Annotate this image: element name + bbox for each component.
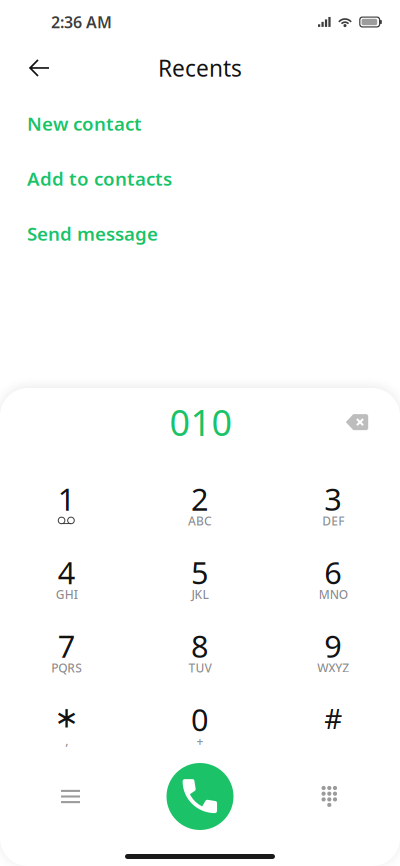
button[interactable]: 0 xyxy=(133,689,267,763)
button[interactable]: 4 xyxy=(0,542,133,616)
staticText: 2:36 AM xyxy=(51,11,112,33)
staticText: 7 xyxy=(58,625,76,666)
staticText: WXYZ xyxy=(317,660,349,676)
staticText: 1 xyxy=(58,478,76,519)
button[interactable]: Add to contacts xyxy=(0,151,400,206)
staticText: JKL xyxy=(191,586,208,602)
button[interactable]: 5 xyxy=(133,542,267,616)
staticText: # xyxy=(324,700,342,737)
staticText: 4 xyxy=(58,552,76,593)
staticText: ABC xyxy=(188,513,212,529)
staticText: 5 xyxy=(191,552,209,593)
staticText: MNO xyxy=(319,586,348,602)
staticText: Add to contacts xyxy=(27,166,172,191)
staticText: PQRS xyxy=(51,660,82,676)
staticText: DEF xyxy=(322,513,344,529)
staticText: + xyxy=(196,733,203,749)
button[interactable]: Call log xyxy=(34,765,106,827)
staticText: 8 xyxy=(191,625,209,666)
staticText: 2 xyxy=(191,478,209,519)
button[interactable]: Call xyxy=(166,763,233,830)
button[interactable]: Keypad xyxy=(293,765,365,827)
button[interactable]: 1 xyxy=(0,469,133,542)
button[interactable]: 7 xyxy=(0,616,133,689)
button[interactable]: New contact xyxy=(0,96,400,151)
staticText: 3 xyxy=(324,478,342,519)
button[interactable]: Delete xyxy=(330,399,384,445)
staticText: 9 xyxy=(324,625,342,666)
staticText: 010 xyxy=(169,398,232,446)
staticText: , xyxy=(65,732,68,748)
button[interactable]: 9 xyxy=(267,616,400,689)
staticText: Send message xyxy=(27,221,158,246)
button[interactable]: 3 xyxy=(267,469,400,542)
button[interactable]: 2 xyxy=(133,469,267,542)
staticText: New contact xyxy=(27,111,142,136)
staticText: TUV xyxy=(188,660,211,676)
staticText: 0 xyxy=(191,699,209,740)
button[interactable]: # xyxy=(267,689,400,763)
staticText: GHI xyxy=(56,586,78,602)
button[interactable]: 8 xyxy=(133,616,267,689)
staticText: ∗ xyxy=(54,701,79,734)
staticText: Recents xyxy=(158,53,242,83)
button[interactable]: Send message xyxy=(0,206,400,261)
button[interactable]: Back xyxy=(16,45,62,91)
button[interactable]: ∗ xyxy=(0,689,133,763)
staticText: 6 xyxy=(324,552,342,593)
button[interactable]: 6 xyxy=(267,542,400,616)
